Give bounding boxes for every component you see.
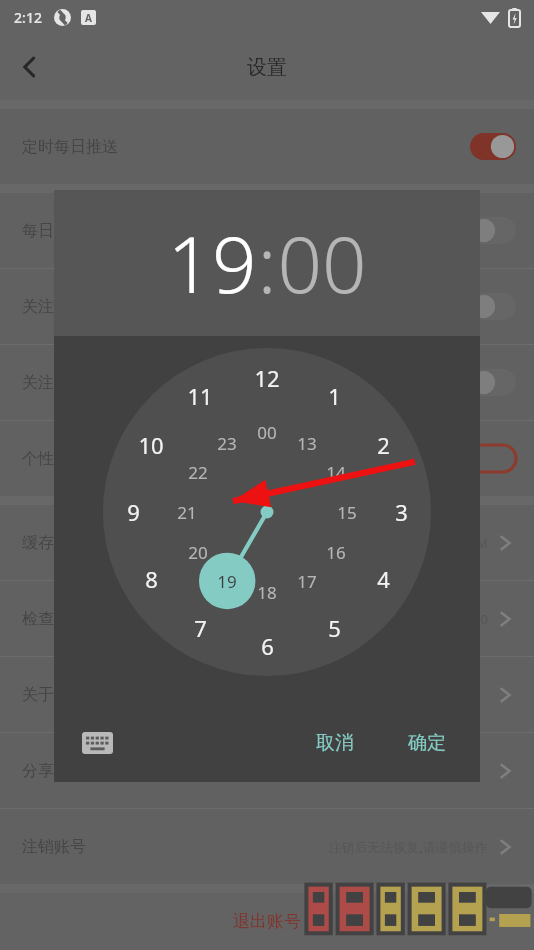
button[interactable]: 7 — [177, 605, 223, 651]
button[interactable]: 退出账号 — [0, 893, 534, 950]
staticText: 19 — [167, 210, 257, 316]
staticText: A — [85, 11, 92, 25]
staticText: 每日推送时间 — [22, 221, 118, 241]
button[interactable]: 19 — [167, 210, 257, 316]
button[interactable]: 17 — [284, 558, 330, 604]
staticText: 关于我们 — [22, 685, 86, 705]
staticText: 关注的人更新提醒 — [22, 297, 150, 317]
button[interactable]: 缓存清理 — [0, 505, 534, 580]
staticText: 关注的话题更新 — [22, 373, 134, 393]
staticText: 14 — [326, 461, 346, 484]
staticText: 缓存清理 — [22, 533, 86, 553]
button[interactable]: 23 — [204, 420, 250, 466]
staticText: 9 — [127, 497, 140, 527]
button[interactable]: 8 — [128, 556, 174, 602]
button[interactable]: 分享给好友 — [0, 733, 534, 808]
staticText: 注销后无法恢复,请谨慎操作 — [328, 838, 488, 856]
staticText: 8 — [145, 564, 158, 594]
button[interactable]: Back — [0, 37, 60, 97]
staticText: 注销账号 — [22, 837, 86, 857]
staticText: 22 — [188, 461, 208, 484]
staticText: 2 — [377, 430, 390, 460]
button[interactable]: 15 — [324, 489, 370, 535]
button[interactable]: Switch to keyboard input — [74, 720, 120, 766]
button[interactable]: 10 — [128, 422, 174, 468]
button[interactable]: 9 — [110, 489, 156, 535]
button[interactable]: 3 — [378, 489, 424, 535]
staticText: 00 — [257, 421, 277, 444]
staticText: 15 — [337, 501, 357, 524]
staticText: 16 — [326, 541, 346, 564]
staticText: 12 — [254, 363, 280, 393]
staticText: 退出账号 — [233, 911, 301, 932]
button[interactable]: 5 — [311, 605, 357, 651]
staticText: v2.1.0 — [452, 610, 488, 628]
button[interactable]: 21 — [164, 489, 210, 535]
button[interactable]: 22 — [175, 449, 221, 495]
staticText: 11 — [187, 381, 213, 411]
staticText: 5 — [328, 613, 341, 643]
button[interactable]: 20 — [175, 529, 221, 575]
button[interactable]: 关于我们 — [0, 657, 534, 732]
staticText: 23 — [217, 432, 237, 455]
button[interactable]: 关注的话题更新 — [0, 345, 534, 420]
staticText: 检查更新 — [22, 609, 86, 629]
button[interactable]: 取消 — [302, 721, 368, 765]
button[interactable]: 16 — [313, 529, 359, 575]
button[interactable]: 14 — [313, 449, 359, 495]
button[interactable]: 6 — [244, 623, 290, 669]
button[interactable]: 00 — [244, 409, 290, 455]
staticText: 6 — [261, 631, 274, 661]
staticText: 21 — [177, 501, 197, 524]
staticText: 18 — [257, 581, 277, 604]
staticText: 23.5M — [450, 534, 488, 552]
staticText: : — [257, 210, 277, 316]
button[interactable]: 确定 — [394, 721, 460, 765]
button[interactable]: 个性化内容推荐 — [0, 421, 534, 496]
button[interactable]: 检查更新 — [0, 581, 534, 656]
staticText: 3 — [395, 497, 408, 527]
staticText: 4 — [377, 564, 390, 594]
button[interactable]: 11 — [177, 373, 223, 419]
staticText: 分享给好友 — [22, 761, 102, 781]
button[interactable]: 关注的人更新提醒 — [0, 269, 534, 344]
button[interactable]: 12 — [244, 355, 290, 401]
staticText: 7 — [194, 613, 207, 643]
staticText: 17 — [297, 570, 317, 593]
staticText: 10 — [138, 430, 164, 460]
staticText: 19 — [217, 570, 237, 593]
button[interactable]: 4 — [360, 556, 406, 602]
staticText: 00 — [277, 210, 367, 316]
button[interactable]: 每日推送时间 — [0, 193, 534, 268]
button[interactable]: 2 — [360, 422, 406, 468]
staticText: 个性化内容推荐 — [22, 449, 134, 469]
button[interactable]: 1 — [311, 373, 357, 419]
staticText: 定时每日推送 — [22, 137, 118, 157]
button[interactable]: 18 — [244, 569, 290, 615]
staticText: 1 — [328, 381, 341, 411]
staticText: 13 — [297, 432, 317, 455]
button[interactable]: 定时每日推送 — [0, 109, 534, 184]
button[interactable]: 13 — [284, 420, 330, 466]
button[interactable]: 注销账号 — [0, 809, 534, 884]
button[interactable]: 00 — [277, 210, 367, 316]
staticText: 确定 — [408, 731, 446, 755]
staticText: 2:12 — [14, 8, 42, 27]
button[interactable]: 19 — [204, 558, 250, 604]
staticText: 取消 — [316, 731, 354, 755]
staticText: 设置 — [247, 55, 287, 80]
staticText: 20 — [188, 541, 208, 564]
